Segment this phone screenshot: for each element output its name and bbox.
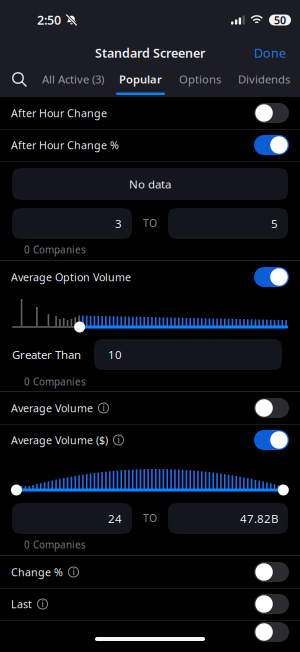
staticText: Popular <box>119 72 162 87</box>
staticText: After Hour Change % <box>11 138 119 152</box>
staticText: Last <box>11 597 32 611</box>
button[interactable]: Dividends <box>230 66 298 95</box>
staticText: No data <box>129 176 171 192</box>
staticText: After Hour Change <box>11 106 107 120</box>
staticText: 10 <box>108 347 122 362</box>
staticText: 24 <box>108 511 122 526</box>
button[interactable]: Change % <box>0 556 300 589</box>
staticText: 0 Companies <box>24 538 86 551</box>
staticText: TO <box>143 511 157 525</box>
button[interactable]: Average Volume <box>0 392 300 425</box>
staticText: 0 Companies <box>24 243 86 256</box>
staticText: Average Option Volume <box>11 270 131 284</box>
button[interactable]: After Hour Change <box>0 97 300 130</box>
staticText: 3 <box>115 216 122 231</box>
button[interactable]: Last <box>0 588 300 621</box>
staticText: Standard Screener <box>95 44 205 62</box>
staticText: 47.82B <box>240 511 278 526</box>
button[interactable]: Average Option Volume <box>0 261 300 294</box>
staticText: Dividends <box>238 72 290 87</box>
staticText: i <box>72 567 74 577</box>
staticText: 0 Companies <box>24 375 86 388</box>
staticText: Average Volume ($) <box>11 433 108 447</box>
button[interactable]: All Active (3) <box>35 66 111 95</box>
staticText: TO <box>143 216 157 230</box>
staticText: i <box>117 435 119 445</box>
staticText: 5 <box>271 216 278 231</box>
button[interactable]: Search <box>0 71 35 95</box>
staticText: Change % <box>11 565 63 579</box>
staticText: Options <box>179 72 221 87</box>
button[interactable]: After Hour Change % <box>0 129 300 162</box>
button[interactable]: Done <box>248 39 292 67</box>
button[interactable]: Options <box>170 66 230 95</box>
staticText: Greater Than <box>12 347 81 362</box>
staticText: 50 <box>274 13 286 27</box>
staticText: i <box>102 403 104 413</box>
staticText: All Active (3) <box>42 72 104 87</box>
staticText: Average Volume <box>11 401 93 415</box>
staticText: 2:50 <box>37 11 61 29</box>
staticText: Done <box>254 44 286 62</box>
button[interactable]: Average Volume ($) <box>0 424 300 457</box>
button[interactable]: Popular <box>111 66 170 95</box>
staticText: i <box>41 599 43 609</box>
